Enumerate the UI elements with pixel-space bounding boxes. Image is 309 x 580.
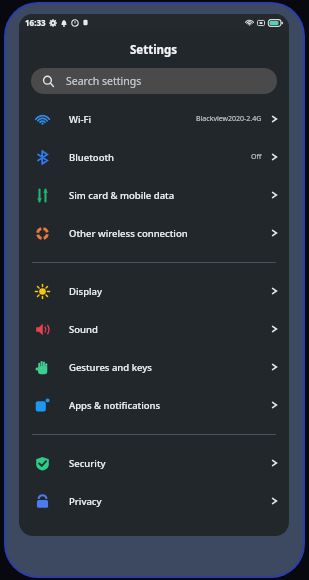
button[interactable]: Wi-Fi bbox=[19, 100, 289, 138]
staticText: Search settings bbox=[66, 74, 142, 88]
button[interactable]: Bluetooth bbox=[19, 138, 289, 176]
staticText: Apps & notifications bbox=[69, 399, 161, 412]
button[interactable]: Apps & notifications bbox=[19, 386, 289, 424]
staticText: Off bbox=[251, 152, 262, 162]
staticText: Sound bbox=[69, 323, 98, 336]
button[interactable]: Security bbox=[19, 444, 289, 482]
staticText: Blackview2020-2.4G bbox=[196, 114, 262, 124]
staticText: Bluetooth bbox=[69, 151, 115, 164]
staticText: Other wireless connection bbox=[69, 227, 188, 240]
staticText: Settings bbox=[130, 42, 178, 58]
staticText: Wi-Fi bbox=[69, 113, 92, 126]
staticText: Sim card & mobile data bbox=[69, 189, 175, 202]
staticText: 16:33 bbox=[25, 17, 46, 28]
staticText: Display bbox=[69, 285, 103, 298]
staticText: Security bbox=[69, 457, 106, 470]
button[interactable]: Gestures and keys bbox=[19, 348, 289, 386]
button[interactable]: Display bbox=[19, 272, 289, 310]
button[interactable]: Sim card & mobile data bbox=[19, 176, 289, 214]
button[interactable]: Privacy bbox=[19, 482, 289, 520]
button[interactable]: Sound bbox=[19, 310, 289, 348]
button[interactable]: Other wireless connection bbox=[19, 214, 289, 252]
staticText: Gestures and keys bbox=[69, 361, 152, 374]
button[interactable]: Search settings bbox=[31, 68, 277, 94]
staticText: Privacy bbox=[69, 495, 102, 508]
